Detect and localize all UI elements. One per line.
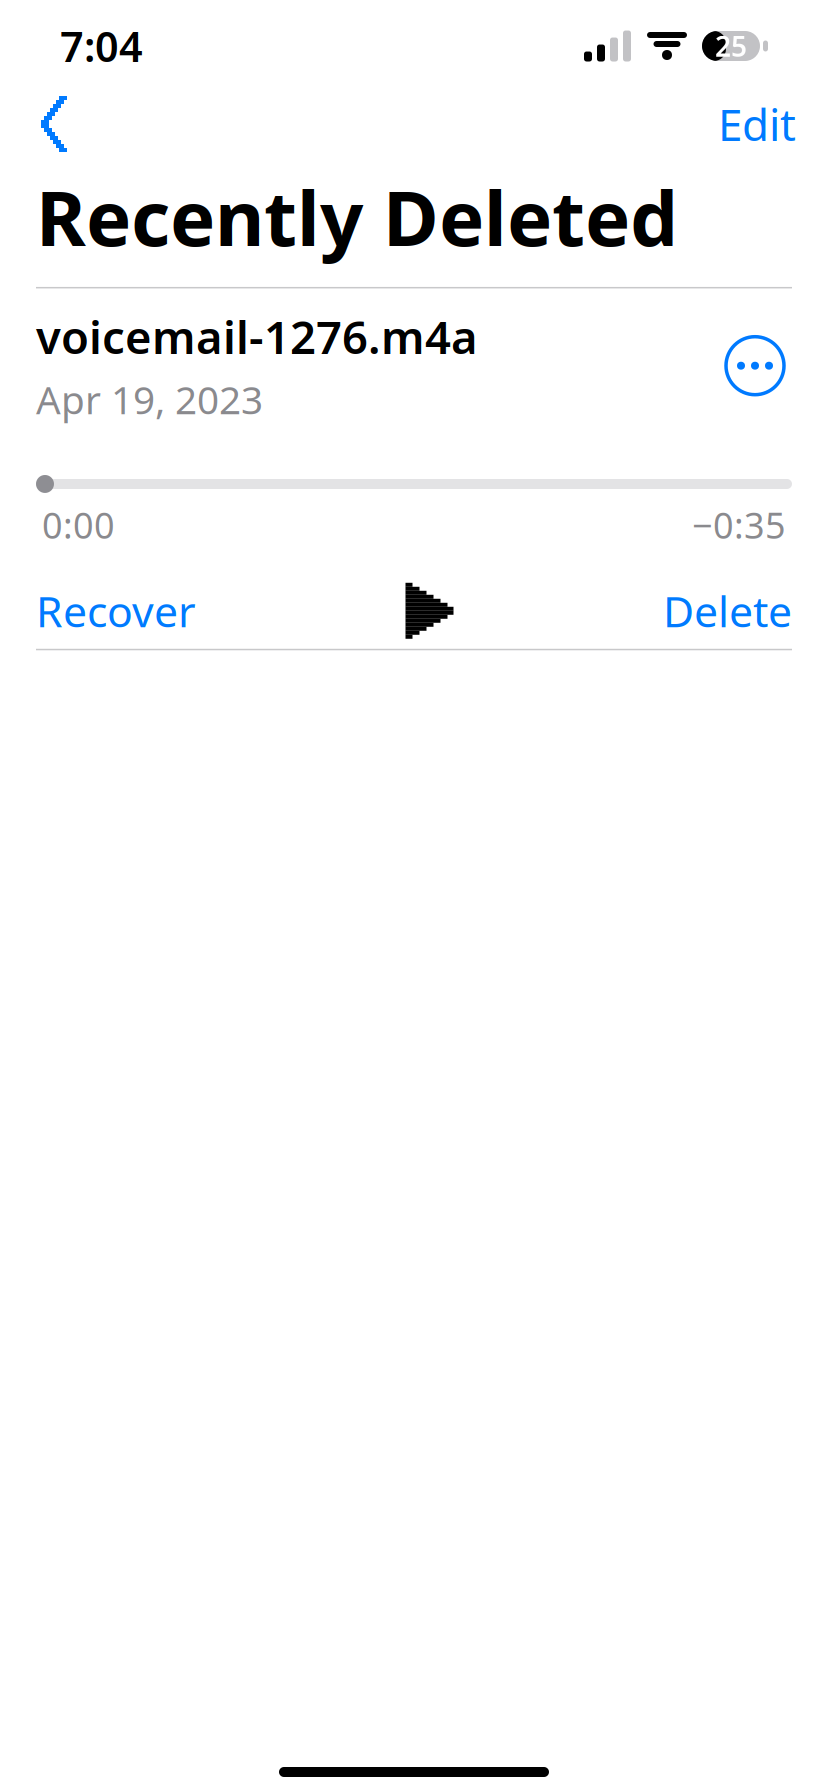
staticText: voicemail-1276.m4a (36, 306, 478, 367)
button[interactable]: Play (381, 573, 477, 649)
staticText: Recover (36, 582, 196, 639)
staticText: Recently Deleted (36, 166, 678, 267)
staticText: Edit (718, 95, 796, 153)
staticText: 7:04 (60, 19, 143, 73)
button[interactable]: Recover (36, 573, 196, 649)
button[interactable]: More options (718, 329, 792, 403)
button[interactable]: Back (20, 90, 92, 158)
button[interactable]: Delete (663, 573, 792, 649)
staticText: Delete (663, 582, 792, 639)
staticText: Apr 19, 2023 (36, 374, 263, 425)
button[interactable]: Edit (706, 90, 808, 158)
staticText: 25 (715, 27, 747, 65)
staticText: 0:00 (42, 501, 115, 549)
staticText: −0:35 (692, 501, 786, 549)
